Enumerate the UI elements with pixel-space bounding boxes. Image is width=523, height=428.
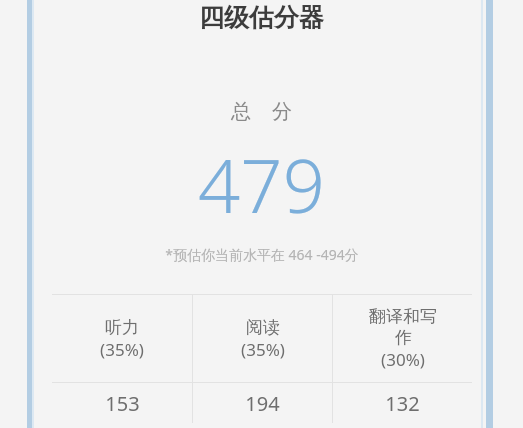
button[interactable]: 194: [193, 383, 332, 423]
button[interactable]: 阅读: [193, 295, 332, 382]
button[interactable]: 听力: [52, 295, 192, 382]
button[interactable]: 翻译和写: [333, 295, 472, 382]
staticText: 总 分: [231, 97, 292, 124]
button[interactable]: 153: [52, 383, 192, 423]
staticText: 作: [395, 327, 412, 348]
staticText: *预估你当前水平在 464 -494分: [165, 245, 359, 264]
staticText: (30%): [381, 348, 425, 371]
staticText: (35%): [100, 338, 144, 361]
staticText: 132: [385, 390, 420, 417]
staticText: 听力: [105, 317, 139, 338]
staticText: 翻译和写: [369, 306, 437, 327]
button[interactable]: 132: [333, 383, 472, 423]
staticText: (35%): [241, 338, 285, 361]
staticText: 153: [105, 390, 140, 417]
button[interactable]: 四级估分器: [0, 2, 523, 33]
staticText: 479: [198, 134, 325, 235]
staticText: 194: [245, 390, 280, 417]
staticText: 四级估分器: [199, 2, 324, 33]
staticText: 阅读: [246, 317, 280, 338]
